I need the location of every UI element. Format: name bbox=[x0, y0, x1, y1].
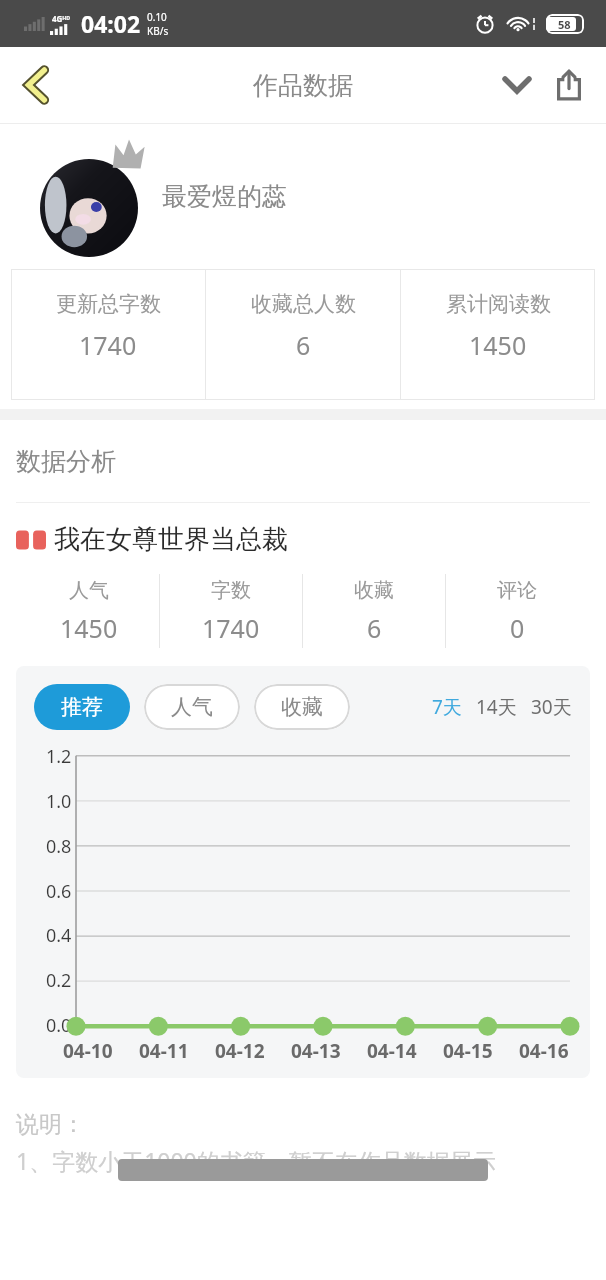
staticText: 0.4 bbox=[46, 923, 72, 948]
staticText: 推荐 bbox=[61, 694, 103, 720]
staticText: 0.6 bbox=[46, 879, 72, 904]
staticText: 04-14 bbox=[367, 1038, 417, 1064]
staticText: 6 bbox=[296, 328, 311, 362]
staticText: 更新总字数 bbox=[56, 291, 161, 317]
button[interactable]: 7天 bbox=[430, 694, 464, 720]
staticText: 58 bbox=[558, 17, 571, 31]
button[interactable]: Avatar bbox=[40, 159, 138, 257]
staticText: 人气 bbox=[69, 578, 109, 603]
staticText: 04-13 bbox=[291, 1038, 341, 1064]
staticText: 收藏 bbox=[354, 578, 394, 603]
staticText: 04:02 bbox=[81, 8, 141, 39]
staticText: 0.0 bbox=[46, 1013, 72, 1038]
staticText: 最爱煜的蕊 bbox=[162, 181, 287, 212]
staticText: 1450 bbox=[60, 611, 118, 645]
staticText: 0.10 bbox=[147, 10, 167, 24]
staticText: 累计阅读数 bbox=[446, 291, 551, 317]
button[interactable]: 我在女尊世界当总裁 bbox=[16, 523, 606, 556]
staticText: KB/s bbox=[147, 24, 169, 38]
button[interactable]: 收藏 bbox=[254, 684, 350, 730]
staticText: 收藏总人数 bbox=[251, 291, 356, 317]
button[interactable]: 人气 bbox=[18, 566, 159, 656]
button[interactable]: 14天 bbox=[474, 694, 519, 720]
button[interactable]: 字数 bbox=[160, 566, 302, 656]
button[interactable]: 评论 bbox=[446, 566, 588, 656]
staticText: 收藏 bbox=[281, 694, 323, 720]
staticText: 04-15 bbox=[443, 1038, 493, 1064]
staticText: 作品数据 bbox=[253, 70, 353, 101]
staticText: 1450 bbox=[469, 328, 527, 362]
button[interactable]: 收藏总人数 bbox=[206, 269, 400, 400]
button[interactable]: 更新总字数 bbox=[11, 269, 205, 400]
button[interactable]: Share bbox=[544, 60, 594, 110]
staticText: 评论 bbox=[497, 578, 537, 603]
button[interactable]: 人气 bbox=[144, 684, 240, 730]
staticText: 04-10 bbox=[63, 1038, 113, 1064]
staticText: 0.8 bbox=[46, 834, 72, 859]
button[interactable]: Expand bbox=[492, 60, 542, 110]
staticText: 4Gᴴᴰ bbox=[52, 13, 71, 24]
staticText: 我在女尊世界当总裁 bbox=[54, 523, 288, 556]
staticText: 1.2 bbox=[46, 744, 72, 769]
staticText: 人气 bbox=[171, 694, 213, 720]
staticText: 1740 bbox=[79, 328, 137, 362]
staticText: 1740 bbox=[202, 611, 260, 645]
staticText: 0.2 bbox=[46, 968, 72, 993]
staticText: 6 bbox=[367, 611, 382, 645]
staticText: 0 bbox=[510, 611, 525, 645]
staticText: 说明： bbox=[16, 1110, 85, 1139]
staticText: 字数 bbox=[211, 578, 251, 603]
button[interactable]: 30天 bbox=[529, 694, 574, 720]
button[interactable]: 推荐 bbox=[34, 684, 130, 730]
staticText: 04-11 bbox=[139, 1038, 189, 1064]
staticText: 数据分析 bbox=[16, 446, 116, 477]
staticText: 04-16 bbox=[519, 1038, 569, 1064]
staticText: 1.0 bbox=[46, 789, 72, 814]
staticText: 1、字数小于1000的书籍，暂不在作品数据展示 bbox=[16, 1145, 496, 1176]
staticText: 04-12 bbox=[215, 1038, 265, 1064]
button[interactable]: 收藏 bbox=[303, 566, 445, 656]
button[interactable]: Back bbox=[10, 59, 62, 111]
button[interactable]: 累计阅读数 bbox=[401, 269, 595, 400]
